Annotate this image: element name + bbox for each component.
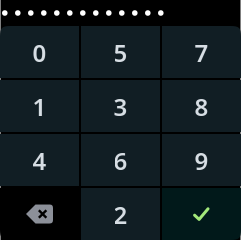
staticText: 0 bbox=[32, 37, 46, 69]
staticText: 1 bbox=[32, 91, 46, 123]
staticText: 8 bbox=[194, 91, 208, 123]
button[interactable]: 5 bbox=[81, 26, 160, 78]
staticText: 9 bbox=[194, 145, 208, 177]
button[interactable]: 9 bbox=[162, 134, 241, 186]
staticText: 3 bbox=[113, 91, 127, 123]
staticText: 4 bbox=[32, 145, 46, 177]
button[interactable]: 3 bbox=[81, 80, 160, 132]
staticText: 6 bbox=[113, 145, 127, 177]
button[interactable]: 1 bbox=[0, 80, 79, 132]
button[interactable]: 7 bbox=[162, 26, 241, 78]
staticText: 2 bbox=[113, 199, 127, 231]
button[interactable]: 4 bbox=[0, 134, 79, 186]
button[interactable]: Confirm passcode bbox=[162, 188, 241, 240]
button[interactable]: 2 bbox=[81, 188, 160, 240]
button[interactable]: 0 bbox=[0, 26, 79, 78]
button[interactable]: 8 bbox=[162, 80, 241, 132]
button[interactable]: 6 bbox=[81, 134, 160, 186]
staticText: 5 bbox=[113, 37, 127, 69]
staticText: 7 bbox=[194, 37, 208, 69]
button[interactable]: Delete bbox=[0, 188, 79, 240]
